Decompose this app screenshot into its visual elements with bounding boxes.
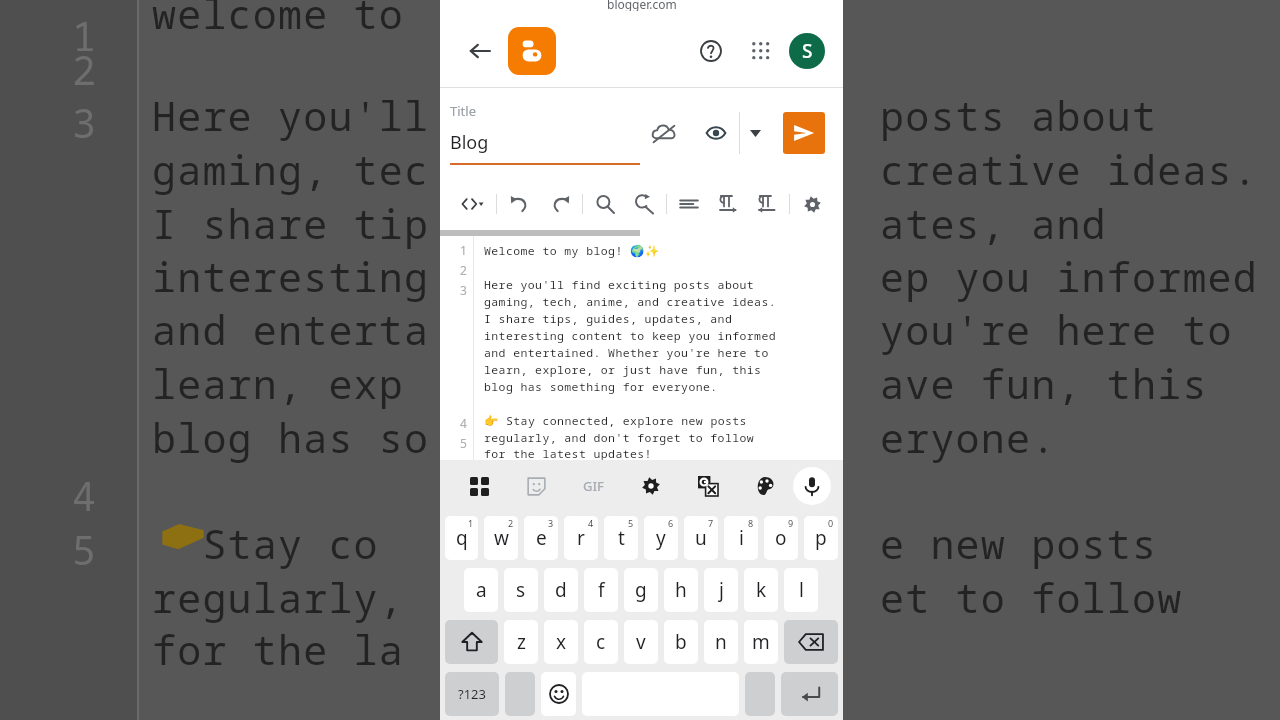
button[interactable]: x: [544, 620, 578, 664]
button[interactable]: Redo: [543, 187, 577, 221]
button[interactable]: g: [624, 568, 658, 612]
button[interactable]: Period: [745, 672, 775, 716]
staticText: 5: [628, 517, 634, 529]
staticText: I share tips, guides, updates, and: [484, 311, 733, 327]
button[interactable]: Publish: [783, 112, 825, 154]
button[interactable]: Comma: [505, 672, 535, 716]
staticText: posts about: [880, 88, 1158, 142]
button[interactable]: GIF: [565, 466, 622, 506]
staticText: y: [656, 525, 666, 551]
button[interactable]: Toolbox: [450, 466, 508, 506]
staticText: interesting: [152, 249, 430, 303]
button[interactable]: w: [484, 516, 518, 560]
button[interactable]: Numbers: [445, 672, 499, 716]
button[interactable]: Back: [460, 31, 500, 71]
staticText: z: [517, 629, 526, 655]
staticText: o: [775, 525, 787, 551]
button[interactable]: t: [604, 516, 638, 560]
button[interactable]: j: [704, 568, 738, 612]
button[interactable]: Settings: [622, 466, 679, 506]
button[interactable]: Find and replace: [627, 187, 661, 221]
button[interactable]: k: [744, 568, 778, 612]
staticText: for the la: [152, 622, 404, 676]
button[interactable]: Alignment: [672, 187, 706, 221]
button[interactable]: Shift: [445, 620, 498, 664]
staticText: Welcome to my blog! 🌍✨: [484, 243, 660, 259]
staticText: b: [675, 629, 687, 655]
button[interactable]: b: [664, 620, 698, 664]
button[interactable]: y: [644, 516, 678, 560]
staticText: gaming, tec: [152, 142, 430, 196]
button[interactable]: Settings: [795, 187, 829, 221]
button[interactable]: Help: [691, 31, 731, 71]
staticText: interesting content to keep you informed: [484, 328, 776, 344]
staticText: j: [719, 577, 724, 603]
button[interactable]: i: [724, 516, 758, 560]
staticText: x: [556, 629, 567, 655]
staticText: and enterta: [152, 302, 430, 356]
staticText: n: [715, 629, 727, 655]
staticText: 1: [468, 517, 474, 529]
button[interactable]: r: [564, 516, 598, 560]
staticText: ave fun, this: [880, 356, 1208, 410]
button[interactable]: Voice input: [793, 467, 831, 505]
button[interactable]: c: [584, 620, 618, 664]
button[interactable]: Enter: [781, 672, 838, 716]
button[interactable]: h: [664, 568, 698, 612]
button[interactable]: Backspace: [784, 620, 838, 664]
staticText: e new posts: [880, 516, 1158, 570]
staticText: u: [695, 525, 707, 551]
button[interactable]: a: [464, 568, 498, 612]
button[interactable]: l: [784, 568, 818, 612]
staticText: 4: [588, 517, 594, 529]
staticText: f: [598, 577, 605, 603]
button[interactable]: Themes: [736, 466, 793, 506]
staticText: eryone.: [880, 410, 1057, 464]
button[interactable]: e: [524, 516, 558, 560]
button[interactable]: f: [584, 568, 618, 612]
staticText: 9: [788, 517, 794, 529]
button[interactable]: o: [764, 516, 798, 560]
button[interactable]: [693, 112, 771, 154]
button[interactable]: Left to right: [711, 187, 745, 221]
staticText: regularly,: [152, 570, 404, 624]
staticText: and entertained. Whether you're here to: [484, 345, 769, 361]
button[interactable]: q: [445, 516, 478, 560]
staticText: you're here to: [880, 302, 1233, 356]
staticText: Here you'll find exciting posts about: [484, 277, 755, 293]
button[interactable]: Google apps: [741, 31, 781, 71]
staticText: 3: [548, 517, 554, 529]
staticText: k: [756, 577, 767, 603]
staticText: 6: [668, 517, 674, 529]
button[interactable]: [541, 672, 576, 716]
staticText: 2: [460, 262, 467, 278]
staticText: s: [516, 577, 526, 603]
staticText: welcome to: [152, 0, 404, 40]
button[interactable]: p: [804, 516, 838, 560]
button[interactable]: d: [544, 568, 578, 612]
staticText: h: [675, 577, 687, 603]
button[interactable]: Stickers: [508, 466, 565, 506]
button[interactable]: z: [504, 620, 538, 664]
button[interactable]: u: [684, 516, 718, 560]
button[interactable]: m: [744, 620, 778, 664]
button[interactable]: n: [704, 620, 738, 664]
staticText: p: [815, 525, 827, 551]
button[interactable]: Blogger: [508, 27, 556, 75]
button[interactable]: View mode: [454, 186, 490, 222]
staticText: GIF: [583, 477, 604, 495]
staticText: c: [596, 629, 606, 655]
button[interactable]: Undo: [503, 187, 537, 221]
button[interactable]: Find: [588, 187, 622, 221]
button[interactable]: Saved: [647, 116, 681, 150]
staticText: 5: [460, 435, 467, 451]
button[interactable]: v: [624, 620, 658, 664]
staticText: 5: [72, 522, 96, 576]
staticText: a: [476, 577, 487, 603]
button[interactable]: Account: [789, 33, 825, 69]
button[interactable]: Right to left: [750, 187, 784, 221]
staticText: Blog: [450, 130, 489, 155]
button[interactable]: s: [504, 568, 538, 612]
button[interactable]: Translate: [679, 466, 736, 506]
